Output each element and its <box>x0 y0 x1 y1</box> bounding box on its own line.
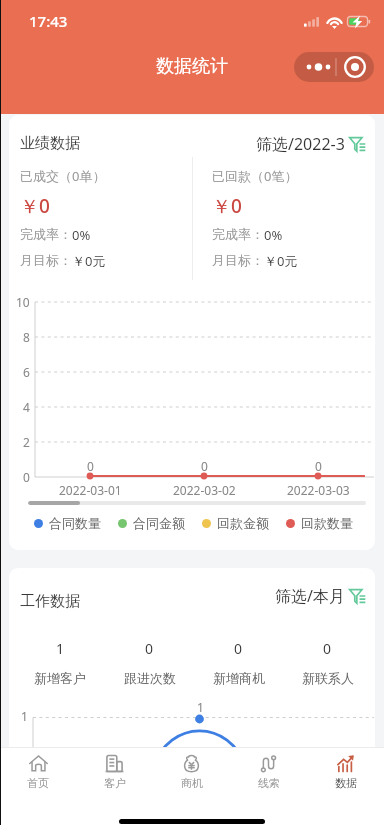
staticText: 已回款（0笔） <box>212 167 298 185</box>
button[interactable]: 0 <box>194 639 283 686</box>
staticText: 合同数量 <box>49 515 101 531</box>
button[interactable]: 回款金额 <box>202 515 269 531</box>
staticText: 2022-03-03 <box>287 482 350 498</box>
staticText: 数据统计 <box>156 55 228 78</box>
button[interactable]: 客户 <box>76 747 153 795</box>
staticText: 2022-03-01 <box>59 482 122 498</box>
button[interactable]: 合同金额 <box>118 515 185 531</box>
staticText: 完成率： <box>212 226 264 242</box>
staticText: 筛选/2022-3 <box>256 133 345 155</box>
staticText: 1 <box>197 699 204 715</box>
staticText: 回款金额 <box>217 515 269 531</box>
staticText: 工作数据 <box>20 592 80 611</box>
staticText: 0 <box>23 469 30 485</box>
staticText: 0 <box>234 639 243 658</box>
staticText: 0 <box>201 458 208 474</box>
button[interactable]: 0 <box>105 639 194 686</box>
button[interactable]: 0 <box>283 639 372 686</box>
button[interactable]: 线索 <box>230 747 307 795</box>
button[interactable]: 筛选/2022-3 <box>256 132 366 156</box>
staticText: 1 <box>21 708 28 724</box>
staticText: 0 <box>323 639 332 658</box>
staticText: 跟进次数 <box>124 670 176 686</box>
staticText: 首页 <box>27 776 49 790</box>
staticText: 0 <box>145 639 154 658</box>
staticText: 数据 <box>335 776 357 790</box>
staticText: 10 <box>16 294 30 310</box>
staticText: 0% <box>72 226 91 244</box>
staticText: 1 <box>56 639 65 658</box>
staticText: 2 <box>23 434 30 450</box>
staticText: 商机 <box>181 776 203 790</box>
staticText: ￥0 <box>20 193 50 219</box>
staticText: ￥0元 <box>72 252 106 270</box>
staticText: ￥0 <box>212 193 242 219</box>
staticText: 新联系人 <box>302 670 354 686</box>
staticText: 新增商机 <box>213 670 265 686</box>
button[interactable]: 数据 <box>307 747 384 795</box>
staticText: 客户 <box>104 776 126 790</box>
button[interactable]: 合同数量 <box>34 515 101 531</box>
staticText: 筛选/本月 <box>275 585 345 607</box>
button[interactable]: More options <box>294 52 374 82</box>
staticText: 新增客户 <box>34 670 86 686</box>
staticText: 完成率： <box>20 226 72 242</box>
button[interactable]: 商机 <box>153 747 230 795</box>
button[interactable]: 回款数量 <box>286 515 353 531</box>
staticText: 0 <box>87 458 94 474</box>
staticText: 业绩数据 <box>20 134 80 153</box>
button[interactable]: 1 <box>15 639 105 686</box>
staticText: 6 <box>23 364 30 380</box>
staticText: 月目标： <box>212 252 264 268</box>
staticText: 17:43 <box>29 11 68 31</box>
button[interactable]: 筛选/本月 <box>275 584 366 608</box>
staticText: 4 <box>23 399 30 415</box>
staticText: 8 <box>23 329 30 345</box>
staticText: 0 <box>315 458 322 474</box>
staticText: 0% <box>264 226 283 244</box>
staticText: 合同金额 <box>133 515 185 531</box>
staticText: 回款数量 <box>301 515 353 531</box>
staticText: 已成交（0单） <box>20 167 106 185</box>
button[interactable]: 首页 <box>0 747 76 795</box>
staticText: ￥0元 <box>264 252 298 270</box>
staticText: 线索 <box>258 776 280 790</box>
staticText: 2022-03-02 <box>173 482 236 498</box>
staticText: 月目标： <box>20 252 72 268</box>
